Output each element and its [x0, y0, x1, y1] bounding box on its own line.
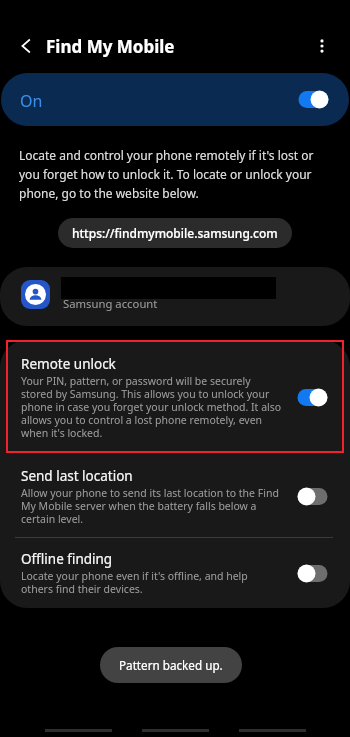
staticText: Allow your phone to send its last locati…	[21, 486, 284, 526]
staticText: Your PIN, pattern, or password will be s…	[21, 374, 284, 440]
other: Find My Mobile on	[298, 90, 329, 109]
staticText: Send last location	[21, 467, 133, 485]
other: Send last location	[297, 487, 328, 506]
staticText: Locate and control your phone remotely i…	[19, 147, 334, 201]
staticText: Pattern backed up.	[119, 657, 223, 673]
button[interactable]: Offline finding	[0, 538, 350, 608]
staticText: On	[20, 90, 43, 112]
other: Remote unlock	[297, 388, 328, 407]
other: Offline finding	[297, 564, 328, 583]
staticText: Find My Mobile	[46, 35, 175, 58]
button[interactable]: Send last location	[0, 453, 350, 537]
button[interactable]: Remote unlock	[0, 340, 350, 453]
button[interactable]: Navigate up	[6, 26, 46, 66]
staticText: Locate your phone even if it's offline, …	[21, 569, 248, 596]
staticText: Remote unlock	[21, 355, 116, 373]
button[interactable]: Samsung account	[0, 267, 350, 326]
staticText: https://findmymobile.samsung.com	[72, 225, 278, 241]
staticText: Samsung account	[63, 296, 158, 311]
button[interactable]: On	[1, 73, 349, 126]
button[interactable]: More options	[302, 26, 342, 66]
button[interactable]: https://findmymobile.samsung.com	[58, 218, 292, 248]
staticText: Offline finding	[21, 550, 113, 568]
